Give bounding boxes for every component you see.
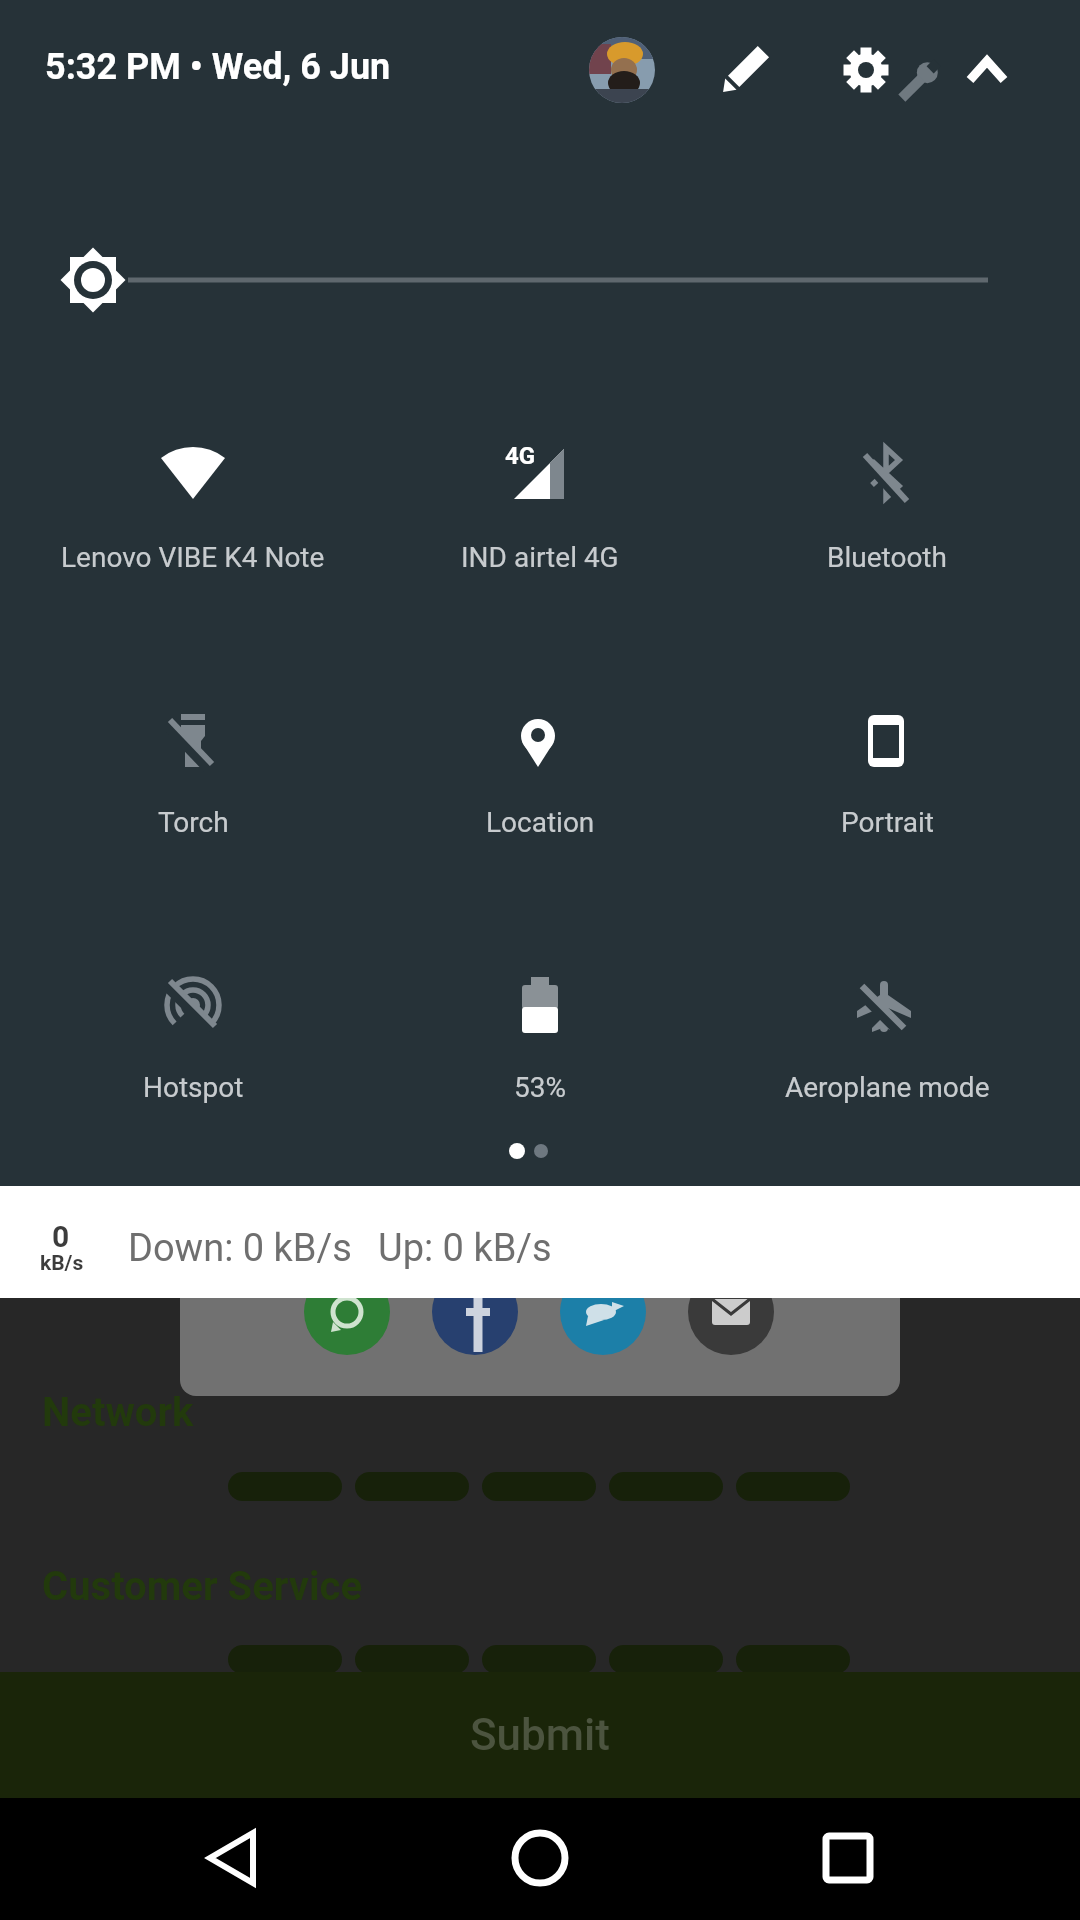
button[interactable] — [559, 1262, 645, 1362]
button[interactable] — [589, 37, 655, 103]
button[interactable] — [304, 1262, 390, 1362]
button[interactable] — [0, 1186, 1080, 1298]
staticText: kB/s — [40, 1251, 84, 1276]
staticText: Hotspot — [143, 1071, 244, 1104]
button[interactable] — [355, 1472, 469, 1501]
staticText: Aeroplane mode — [785, 1071, 990, 1104]
button[interactable] — [955, 38, 1019, 102]
button[interactable] — [380, 685, 700, 865]
staticText: Customer Service — [42, 1563, 363, 1610]
button[interactable] — [380, 420, 700, 600]
staticText: 5:32 PM • Wed, 6 Jun — [45, 46, 391, 88]
staticText: 0 — [52, 1219, 70, 1254]
button[interactable] — [33, 420, 353, 600]
staticText: 53% — [514, 1071, 566, 1104]
button[interactable] — [482, 1645, 596, 1674]
button[interactable] — [609, 1472, 723, 1501]
staticText: Location — [486, 806, 595, 839]
button[interactable] — [727, 685, 1047, 865]
button[interactable] — [40, 240, 1040, 320]
staticText: Submit — [470, 1709, 611, 1761]
button[interactable] — [688, 1262, 774, 1362]
button[interactable] — [460, 1808, 620, 1910]
button[interactable] — [33, 950, 353, 1130]
button[interactable] — [834, 38, 934, 102]
button[interactable] — [228, 1472, 342, 1501]
button[interactable] — [727, 420, 1047, 600]
staticText: IND airtel 4G — [461, 541, 619, 574]
button[interactable] — [380, 950, 700, 1130]
button[interactable] — [727, 950, 1047, 1130]
button[interactable] — [713, 38, 777, 102]
button[interactable] — [152, 1808, 312, 1910]
button[interactable] — [228, 1645, 342, 1674]
staticText: 4G — [505, 442, 536, 470]
button[interactable]: Submit — [0, 1672, 1080, 1798]
button[interactable] — [609, 1645, 723, 1674]
staticText: Bluetooth — [827, 541, 947, 574]
staticText: Down: 0 kB/s — [128, 1226, 352, 1271]
button[interactable] — [33, 685, 353, 865]
staticText: Up: 0 kB/s — [378, 1226, 552, 1271]
staticText: Network — [42, 1389, 194, 1436]
staticText: Torch — [158, 806, 229, 839]
staticText: Lenovo VIBE K4 Note — [61, 541, 325, 574]
button[interactable] — [768, 1808, 928, 1910]
button[interactable] — [482, 1472, 596, 1501]
button[interactable] — [736, 1645, 850, 1674]
staticText: Portrait — [841, 806, 934, 839]
button[interactable] — [355, 1645, 469, 1674]
button[interactable] — [736, 1472, 850, 1501]
button[interactable] — [433, 1262, 519, 1362]
